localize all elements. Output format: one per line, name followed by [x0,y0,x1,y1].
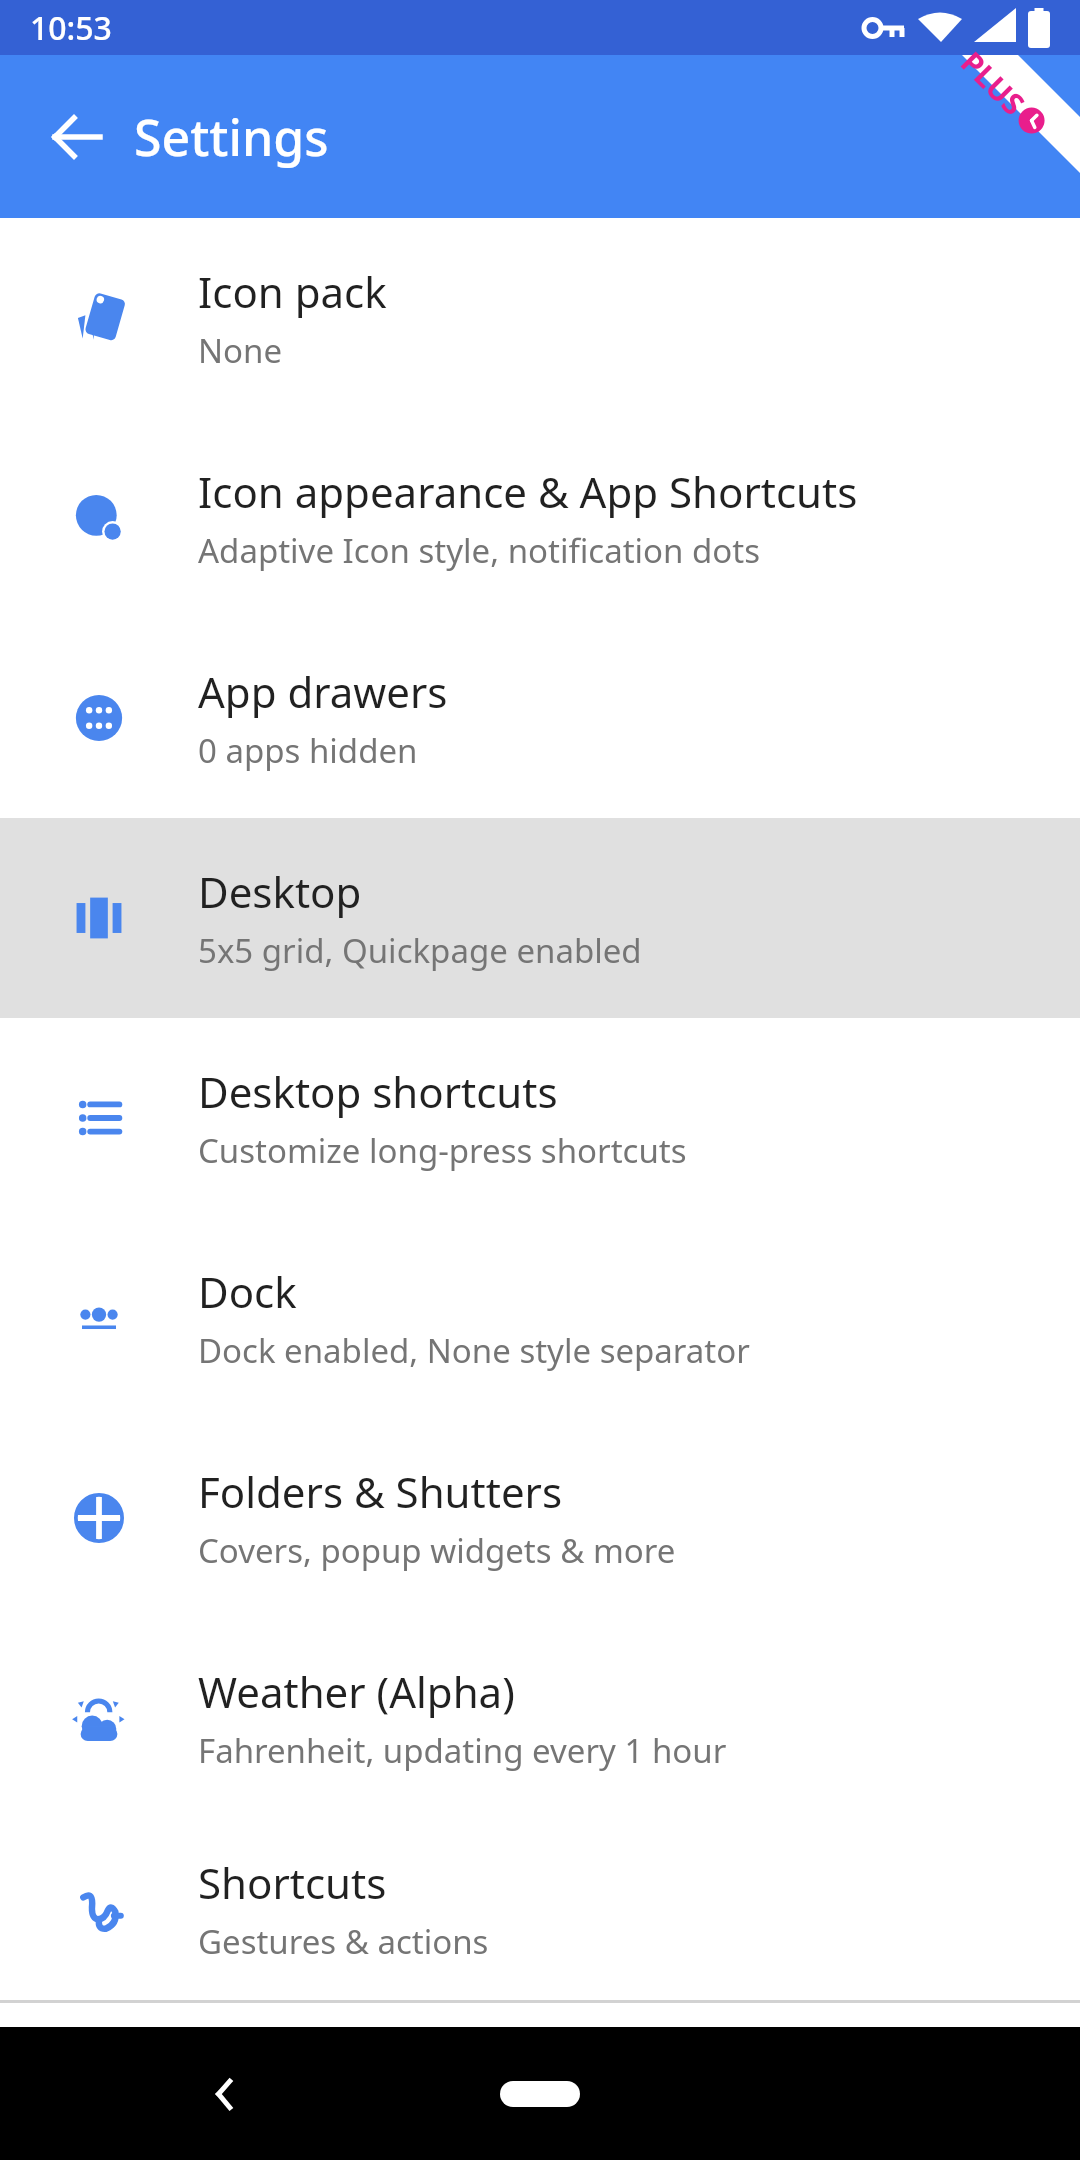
staticText: Icon pack [198,263,387,320]
button[interactable]: Desktop shortcuts [0,1018,1080,1218]
staticText: Shortcuts [198,1854,387,1911]
staticText: Folders & Shutters [198,1463,563,1520]
button[interactable]: Shortcuts [0,1818,1080,2000]
staticText: 0 apps hidden [198,728,418,773]
staticText: Settings [134,103,329,171]
button[interactable]: Desktop [0,818,1080,1018]
staticText: Customize long-press shortcuts [198,1128,687,1173]
staticText: Gestures & actions [198,1919,489,1964]
staticText: Covers, popup widgets & more [198,1528,676,1573]
staticText: Adaptive Icon style, notification dots [198,528,760,573]
staticText: 5x5 grid, Quickpage enabled [198,928,642,973]
staticText: Dock enabled, None style separator [198,1328,750,1373]
button[interactable]: Back [32,91,124,183]
staticText: 10:53 [30,6,112,50]
button[interactable]: Back [180,2049,270,2139]
button[interactable]: Home [480,2059,600,2129]
button[interactable]: Icon pack [0,218,1080,418]
staticText: Dock [198,1263,297,1320]
staticText: PLUS [952,42,1034,124]
staticText: App drawers [198,663,448,720]
staticText: Desktop shortcuts [198,1063,558,1120]
button[interactable]: Icon appearance & App Shortcuts [0,418,1080,618]
button[interactable]: App drawers [0,618,1080,818]
button[interactable]: Dock [0,1218,1080,1418]
button[interactable]: Weather (Alpha) [0,1618,1080,1818]
staticText: Icon appearance & App Shortcuts [198,463,858,520]
staticText: None [198,328,283,373]
staticText: Fahrenheit, updating every 1 hour [198,1728,727,1773]
button[interactable]: Folders & Shutters [0,1418,1080,1618]
staticText: Desktop [198,863,362,920]
staticText: Weather (Alpha) [198,1663,515,1720]
